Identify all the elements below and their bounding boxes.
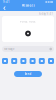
button[interactable]: Action bbox=[30, 58, 36, 64]
button[interactable]: Action bbox=[39, 58, 45, 64]
button[interactable]: Play bbox=[25, 31, 31, 36]
staticText: 9:41 bbox=[3, 0, 10, 4]
button[interactable]: Back bbox=[0, 5, 8, 11]
staticText: Today 9:41 bbox=[38, 12, 53, 15]
staticText: Send bbox=[24, 72, 31, 76]
staticText: Voice note bbox=[20, 20, 36, 23]
button[interactable]: Action bbox=[2, 58, 8, 64]
button[interactable]: Action bbox=[48, 58, 54, 64]
button[interactable]: Send bbox=[14, 71, 42, 77]
staticText: Messages bbox=[21, 4, 34, 7]
staticText: Message bbox=[4, 47, 15, 51]
button[interactable]: Action bbox=[11, 58, 17, 64]
button[interactable]: Action bbox=[20, 58, 26, 64]
